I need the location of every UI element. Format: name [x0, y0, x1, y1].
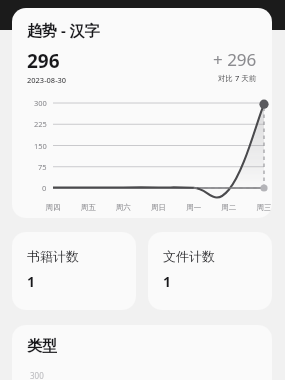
button[interactable]: 书籍计数 [12, 232, 136, 310]
staticText: 趋势 - 汉字 [27, 20, 100, 40]
button[interactable]: 趋势 - 汉字 [12, 8, 272, 218]
staticText: 300 [30, 370, 44, 380]
button[interactable]: 文件计数 [148, 232, 272, 310]
staticText: 书籍计数 [27, 248, 79, 264]
staticText: 2023-08-30 [27, 75, 67, 85]
staticText: 类型 [27, 337, 57, 356]
staticText: 对比 7 天前 [218, 73, 257, 83]
button[interactable]: 类型 [12, 325, 272, 380]
staticText: 文件计数 [163, 248, 215, 264]
staticText: 296 [27, 48, 60, 74]
staticText: + 296 [213, 48, 257, 71]
staticText: 1 [163, 272, 172, 291]
staticText: 1 [27, 272, 36, 291]
